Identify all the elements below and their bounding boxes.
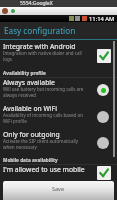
button[interactable]: Toggle xyxy=(97,166,111,180)
button[interactable]: Save xyxy=(3,181,114,200)
staticText: Only for outgoing xyxy=(3,130,60,139)
button[interactable] xyxy=(0,76,117,100)
staticText: Always available xyxy=(3,78,55,87)
button[interactable] xyxy=(0,128,117,152)
staticText: Integrate with Android xyxy=(3,42,76,51)
staticText: 5554:GoogleX xyxy=(20,0,53,7)
button[interactable] xyxy=(0,163,117,178)
button[interactable]: Toggle xyxy=(97,49,111,63)
button[interactable] xyxy=(0,40,117,64)
button[interactable]: Select xyxy=(97,84,109,96)
staticText: Save xyxy=(52,185,65,192)
staticText: Availability profile xyxy=(3,70,46,76)
staticText: Activate the SIP client automatically wh… xyxy=(3,138,79,150)
button[interactable]: Select xyxy=(97,137,109,149)
staticText: Will use battery but incoming calls are … xyxy=(3,86,84,98)
staticText: Mobile data availability xyxy=(3,157,58,163)
button[interactable]: Select xyxy=(97,111,109,123)
staticText: Available on WiFi xyxy=(3,104,57,113)
staticText: I'm allowed to use mobile xyxy=(3,165,85,174)
staticText: Easy configuration xyxy=(4,25,76,36)
staticText: 11:14 AM xyxy=(89,15,115,22)
staticText: Availability of incoming calls based on … xyxy=(3,112,83,124)
staticText: Integration with native dialer and call … xyxy=(3,50,82,62)
button[interactable] xyxy=(0,102,117,126)
